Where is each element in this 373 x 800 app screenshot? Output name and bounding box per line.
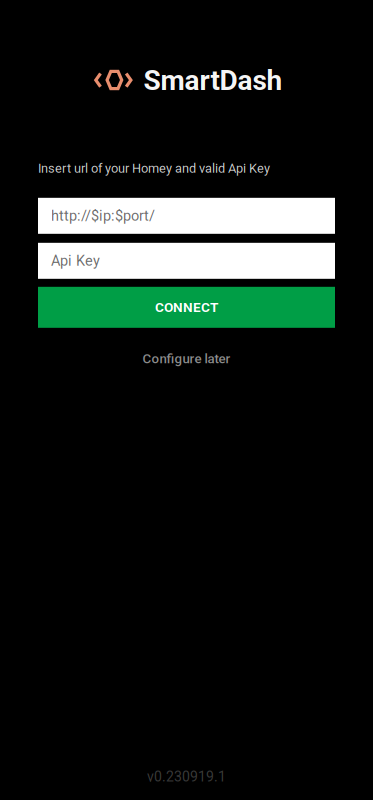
button[interactable]: Api Key [38, 243, 335, 279]
staticText: Configure later [142, 351, 230, 367]
staticText: v0.230919.1 [147, 768, 226, 785]
staticText: Api Key [51, 252, 100, 269]
staticText: http://$ip:$port/ [51, 207, 155, 224]
staticText: CONNECT [155, 299, 218, 315]
button[interactable]: http://$ip:$port/ [38, 198, 335, 234]
staticText: SmartDash [143, 64, 282, 97]
button[interactable]: CONNECT [38, 287, 335, 328]
staticText: Insert url of your Homey and valid Api K… [38, 161, 270, 176]
button[interactable]: Configure later [38, 349, 335, 369]
